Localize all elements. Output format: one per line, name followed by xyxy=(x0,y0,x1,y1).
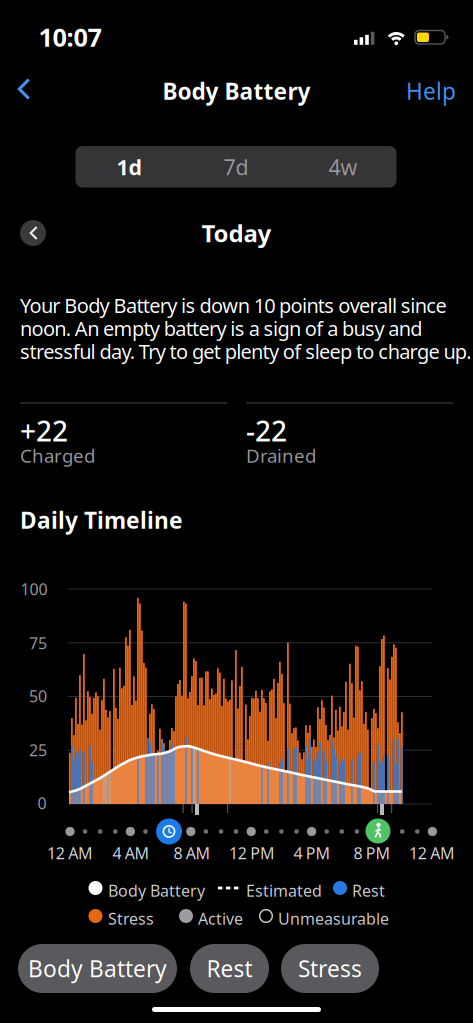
staticText: 12 PM xyxy=(229,842,275,864)
button[interactable]: Back xyxy=(8,69,38,109)
button[interactable]: Sleep event xyxy=(156,818,182,844)
staticText: Stress xyxy=(108,908,154,929)
button[interactable]: Body Battery xyxy=(18,944,177,993)
staticText: Estimated xyxy=(246,880,322,901)
staticText: Stress xyxy=(298,953,362,983)
staticText: 4 PM xyxy=(293,842,330,864)
button[interactable]: 7d xyxy=(182,146,289,188)
staticText: Charged xyxy=(20,443,95,468)
staticText: Help xyxy=(406,76,456,106)
staticText: Your Body Battery is down 10 points over… xyxy=(20,292,447,319)
staticText: Rest xyxy=(352,880,385,901)
staticText: Today xyxy=(201,217,271,249)
button[interactable]: Previous day xyxy=(20,220,46,246)
staticText: 7d xyxy=(223,153,248,181)
button[interactable]: Help xyxy=(406,76,456,106)
staticText: 0 xyxy=(37,792,46,814)
staticText: 75 xyxy=(29,632,47,654)
staticText: Drained xyxy=(246,443,316,468)
button[interactable]: Rest xyxy=(190,944,269,993)
staticText: 1d xyxy=(116,153,141,181)
staticText: Unmeasurable xyxy=(278,908,389,929)
staticText: noon. An empty battery is a sign of a bu… xyxy=(20,315,422,342)
staticText: 8 PM xyxy=(353,842,390,864)
staticText: 4 AM xyxy=(112,842,149,864)
staticText: 4w xyxy=(328,153,357,181)
staticText: +22 xyxy=(20,412,68,449)
button[interactable]: Stress xyxy=(281,944,379,993)
staticText: 10:07 xyxy=(38,20,101,54)
staticText: Body Battery xyxy=(162,76,310,106)
button[interactable]: 1d xyxy=(75,146,182,188)
staticText: 25 xyxy=(29,739,47,761)
staticText: 12 AM xyxy=(409,842,455,864)
button[interactable]: 4w xyxy=(289,146,396,188)
button[interactable]: Activity: walk xyxy=(365,818,390,843)
staticText: Active xyxy=(198,908,243,929)
staticText: 100 xyxy=(20,578,47,600)
staticText: Rest xyxy=(206,953,252,983)
staticText: stressful day. Try to get plenty of slee… xyxy=(20,338,471,365)
staticText: -22 xyxy=(246,412,287,449)
staticText: 8 AM xyxy=(173,842,210,864)
staticText: 50 xyxy=(29,685,47,707)
staticText: Daily Timeline xyxy=(20,505,183,535)
staticText: 12 AM xyxy=(47,842,93,864)
staticText: Body Battery xyxy=(28,953,167,983)
staticText: Body Battery xyxy=(108,880,205,901)
